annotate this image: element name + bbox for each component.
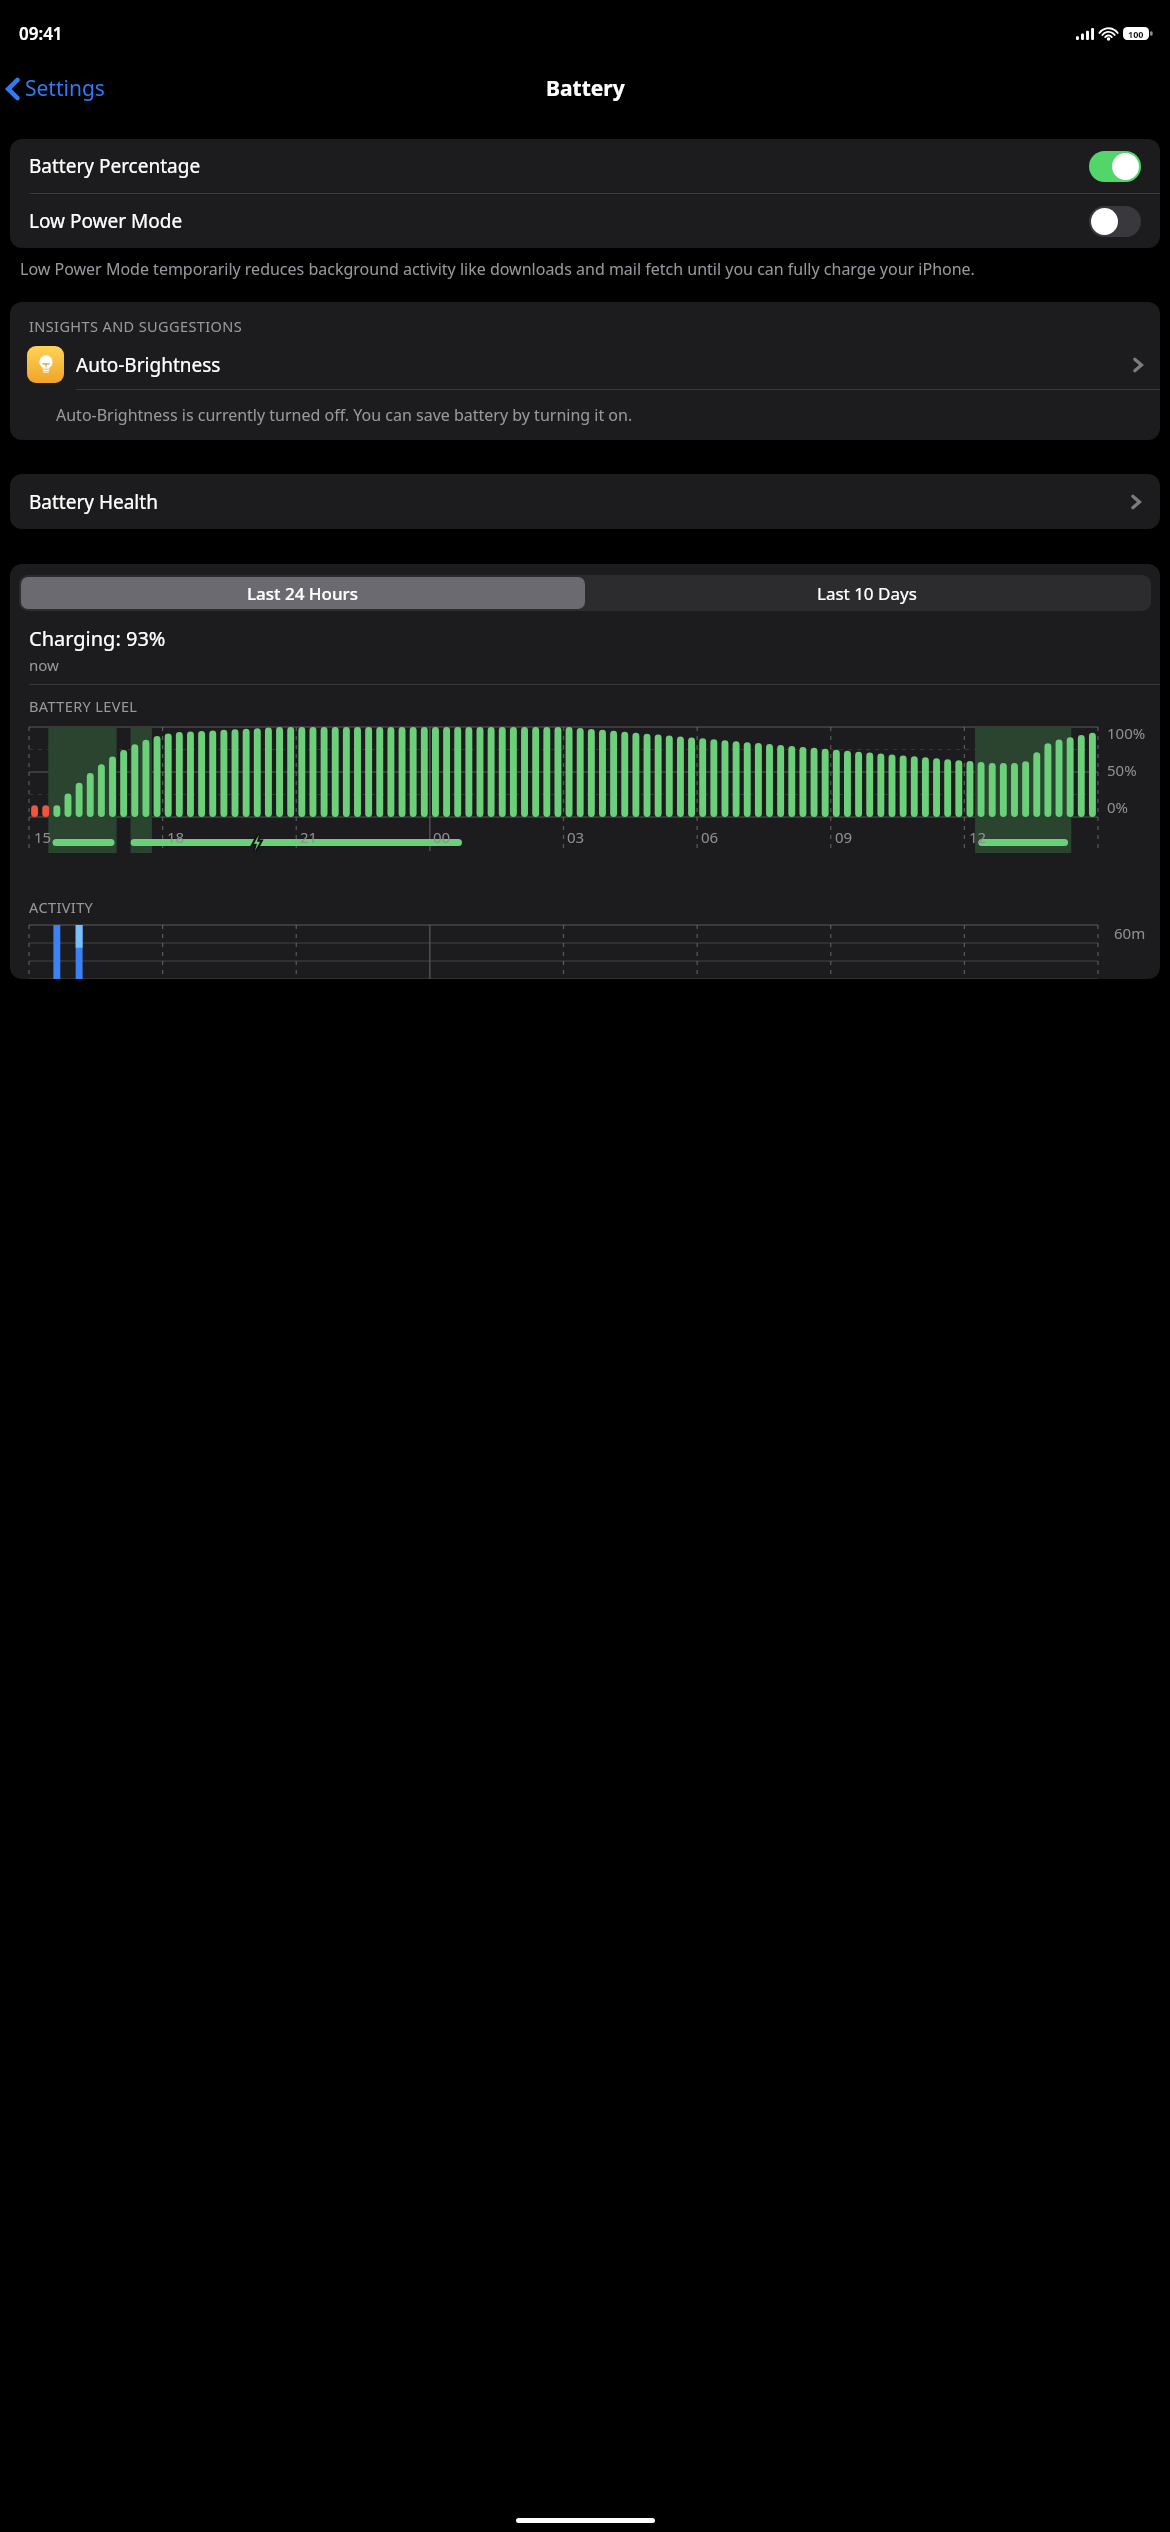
staticText: Battery Health [29, 489, 1131, 515]
button[interactable]: Auto-Brightness [10, 336, 1160, 389]
button[interactable]: Battery Percentage [10, 139, 1160, 193]
button[interactable]: Low Power Mode [10, 194, 1160, 248]
staticText: Settings [25, 74, 105, 103]
staticText: 09 [835, 827, 853, 847]
staticText: Auto-Brightness [76, 352, 1133, 378]
staticText: 21 [300, 827, 318, 847]
staticText: Charging: 93% [29, 625, 166, 652]
staticText: 03 [567, 827, 585, 847]
staticText: 0% [1107, 797, 1129, 817]
staticText: Battery [546, 74, 625, 103]
staticText: ACTIVITY [29, 897, 94, 917]
staticText: Auto-Brightness is currently turned off.… [56, 404, 633, 426]
button[interactable]: Last 10 Days [585, 577, 1149, 609]
staticText: Low Power Mode [29, 208, 1089, 234]
staticText: BATTERY LEVEL [29, 696, 138, 716]
staticText: Battery Percentage [29, 153, 1089, 179]
staticText: 00 [433, 827, 451, 847]
staticText: Last 10 Days [817, 582, 917, 605]
staticText: 06 [701, 827, 719, 847]
staticText: 09:41 [19, 22, 63, 45]
staticText: 100% [1107, 723, 1146, 743]
button[interactable]: Settings [0, 68, 117, 109]
staticText: 100 [1128, 28, 1144, 40]
staticText: 50% [1107, 760, 1137, 780]
staticText: 60m [1114, 923, 1146, 943]
staticText: Last 24 Hours [247, 582, 359, 605]
button[interactable]: Battery Health [10, 474, 1160, 529]
staticText: INSIGHTS AND SUGGESTIONS [29, 316, 243, 336]
staticText: now [29, 655, 59, 675]
button[interactable]: Last 24 Hours [21, 577, 585, 609]
staticText: 15 [34, 827, 52, 847]
staticText: Low Power Mode temporarily reduces backg… [20, 258, 975, 280]
staticText: 18 [167, 827, 185, 847]
staticText: 12 [969, 827, 987, 847]
